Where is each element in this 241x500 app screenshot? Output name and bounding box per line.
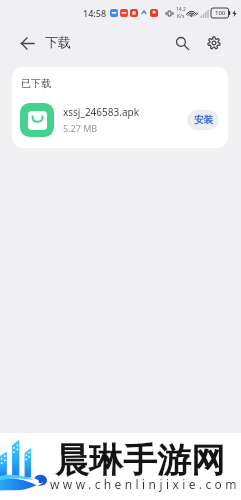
staticText: 下载 (45, 34, 71, 50)
staticText: 晨琳手游网 (55, 439, 225, 482)
button[interactable]: 安装 (187, 110, 219, 130)
staticText: 已下载 (21, 77, 51, 90)
staticText: K/s (177, 13, 185, 20)
staticText: 100 (215, 9, 226, 17)
staticText: 14:58 (83, 7, 107, 19)
button[interactable]: xssj_246583.apk (12, 96, 228, 148)
button[interactable]: Search (171, 32, 193, 54)
staticText: www.chenlinjixie.com (50, 476, 240, 492)
staticText: 5.27 MB (63, 122, 98, 134)
staticText: x (196, 10, 199, 17)
staticText: 安装 (194, 114, 213, 126)
button[interactable]: Settings (203, 32, 225, 54)
button[interactable]: Back (16, 32, 38, 54)
staticText: 14.2 (176, 6, 186, 13)
staticText: xssj_246583.apk (63, 105, 139, 119)
